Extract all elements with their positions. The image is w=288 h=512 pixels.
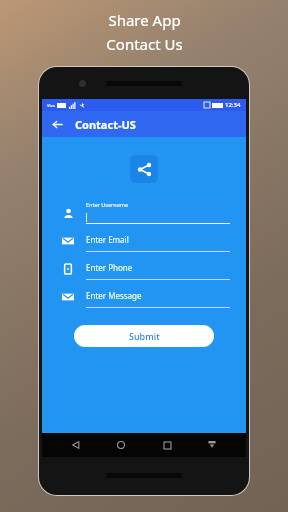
button[interactable]: Share bbox=[130, 155, 158, 183]
button[interactable]: Enter Email bbox=[58, 227, 230, 255]
button[interactable]: Submit bbox=[74, 325, 214, 347]
staticText: Enter Email bbox=[86, 234, 129, 245]
staticText: Enter Message bbox=[86, 290, 142, 301]
staticText: Vivo bbox=[47, 103, 55, 108]
staticText: 12:34 bbox=[225, 101, 241, 109]
button[interactable]: Enter Username bbox=[58, 199, 230, 227]
button[interactable]: Enter Message bbox=[58, 283, 230, 311]
staticText: Share App bbox=[108, 10, 181, 30]
button[interactable]: Recents bbox=[156, 434, 178, 456]
button[interactable]: Back bbox=[65, 434, 87, 456]
button[interactable]: Enter Phone bbox=[58, 255, 230, 283]
staticText: Contact-US bbox=[75, 117, 136, 132]
staticText: Submit bbox=[129, 330, 160, 342]
button[interactable]: Back bbox=[47, 114, 67, 134]
button[interactable]: Home bbox=[110, 434, 132, 456]
staticText: Enter Phone bbox=[86, 262, 133, 273]
staticText: Enter Username bbox=[86, 201, 129, 208]
button[interactable]: Hide keyboard bbox=[201, 434, 223, 456]
staticText: Contact Us bbox=[106, 34, 183, 54]
